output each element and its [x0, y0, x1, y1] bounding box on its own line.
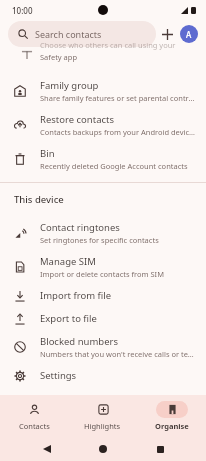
staticText: Manage SIM	[40, 255, 96, 268]
button[interactable]: Family group	[0, 74, 206, 108]
button[interactable]: Contact ringtones	[0, 216, 206, 250]
button[interactable]: Home	[93, 439, 113, 459]
staticText: Recently deleted Google Account contacts	[40, 161, 188, 171]
button[interactable]: Import from file	[0, 284, 206, 307]
staticText: Export to file	[40, 312, 97, 325]
staticText: Settings	[40, 369, 77, 382]
button[interactable]: Recents	[150, 439, 170, 459]
staticText: Bin	[40, 147, 55, 160]
button[interactable]: Account	[180, 25, 198, 43]
button[interactable]: Manage SIM	[0, 250, 206, 284]
button[interactable]: Settings	[0, 364, 206, 387]
button[interactable]: Restore contacts	[0, 108, 206, 142]
staticText: Highlights	[84, 421, 121, 431]
staticText: 10:00	[12, 5, 33, 16]
staticText: Numbers that you won't receive calls or …	[40, 349, 196, 359]
staticText: Search contacts	[35, 28, 102, 40]
staticText: Contacts backups from your Android devic…	[40, 127, 196, 137]
button[interactable]: Contacts	[0, 398, 68, 434]
staticText: Family group	[40, 79, 99, 92]
button[interactable]: Blocked numbers	[0, 330, 206, 364]
staticText: Safety app	[40, 52, 78, 62]
staticText: Organise	[155, 421, 189, 431]
staticText: A	[186, 29, 192, 40]
staticText: Contact ringtones	[40, 221, 120, 234]
staticText: Import from file	[40, 289, 112, 302]
staticText: Share family features or set parental co…	[40, 93, 196, 103]
staticText: Choose who others can call using your ph…	[40, 40, 194, 50]
staticText: Restore contacts	[40, 113, 115, 126]
button[interactable]: Back	[37, 439, 57, 459]
button[interactable]: Export to file	[0, 307, 206, 330]
staticText: Contacts	[19, 421, 50, 431]
button[interactable]: Add contact	[156, 23, 178, 45]
staticText: This device	[14, 193, 64, 206]
button[interactable]: Organise	[137, 398, 206, 434]
button[interactable]: Search contacts	[8, 21, 156, 47]
staticText: Set ringtones for specific contacts	[40, 235, 159, 245]
button[interactable]: Highlights	[68, 398, 137, 434]
staticText: Blocked numbers	[40, 335, 118, 348]
staticText: Import or delete contacts from SIM	[40, 269, 164, 279]
button[interactable]: Bin	[0, 142, 206, 176]
